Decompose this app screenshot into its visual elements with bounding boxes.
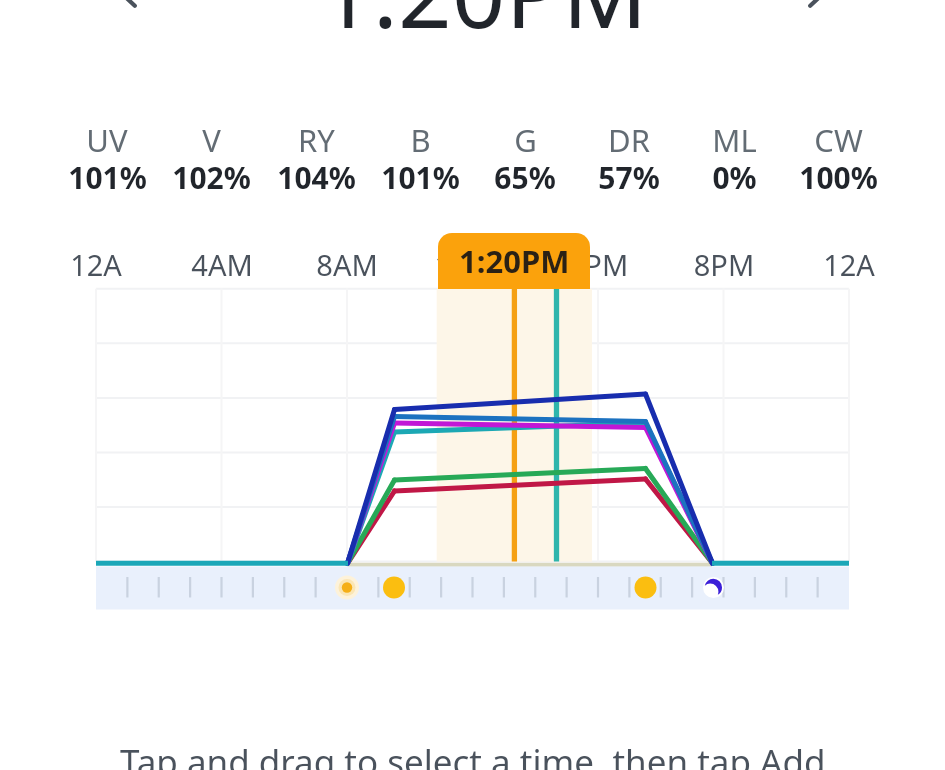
staticText: 12PM: [417, 245, 529, 284]
staticText: CW: [814, 119, 863, 161]
staticText: 104%: [277, 157, 356, 198]
staticText: 0%: [712, 157, 757, 198]
button[interactable]: V: [159, 119, 263, 202]
button[interactable]: Next: [791, 0, 851, 16]
button[interactable]: DR: [577, 119, 681, 202]
staticText: 1:20PM: [459, 240, 570, 282]
button[interactable]: 1:20PM: [438, 233, 590, 289]
button[interactable]: Tap and drag to select a time, then tap …: [120, 738, 826, 770]
button[interactable]: G: [473, 119, 577, 202]
staticText: 101%: [68, 157, 147, 198]
staticText: 12A: [40, 245, 152, 284]
staticText: 4PM: [542, 245, 654, 284]
staticText: ML: [712, 119, 757, 161]
staticText: 101%: [381, 157, 460, 198]
button[interactable]: B: [368, 119, 472, 202]
button[interactable]: ML: [682, 119, 786, 202]
button[interactable]: [0, 0, 945, 770]
staticText: 12A: [793, 245, 905, 284]
staticText: 4AM: [166, 245, 278, 284]
staticText: 8PM: [668, 245, 780, 284]
button[interactable]: RY: [264, 119, 368, 202]
button[interactable]: CW: [786, 119, 890, 202]
staticText: 102%: [172, 157, 251, 198]
staticText: V: [202, 119, 221, 161]
button[interactable]: 1:20PM: [319, 0, 648, 56]
staticText: 8AM: [291, 245, 403, 284]
staticText: 100%: [799, 157, 878, 198]
staticText: 65%: [494, 157, 556, 198]
staticText: UV: [86, 119, 128, 161]
button[interactable]: Previous: [94, 0, 154, 16]
staticText: G: [514, 119, 537, 161]
staticText: DR: [608, 119, 650, 161]
staticText: RY: [298, 119, 335, 161]
staticText: B: [410, 119, 431, 161]
button[interactable]: UV: [55, 119, 159, 202]
staticText: 57%: [598, 157, 660, 198]
